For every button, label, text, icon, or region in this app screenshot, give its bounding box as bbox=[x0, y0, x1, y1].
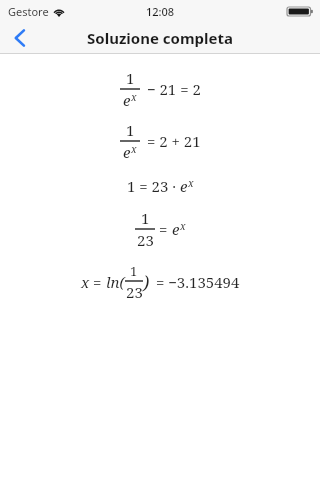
staticText: x bbox=[131, 142, 137, 156]
staticText: 1 = 23 · bbox=[127, 176, 180, 196]
staticText: = 2 + 21 bbox=[143, 131, 201, 151]
staticText: ) bbox=[143, 270, 150, 295]
staticText: − 21 = 2 bbox=[143, 79, 201, 99]
staticText: e bbox=[123, 90, 131, 110]
staticText: = −3.135494 bbox=[152, 272, 240, 292]
staticText: x = bbox=[81, 272, 106, 292]
button[interactable]: Back bbox=[0, 22, 40, 54]
staticText: Gestore bbox=[8, 4, 49, 19]
staticText: 1 bbox=[130, 262, 138, 280]
staticText: 23 bbox=[126, 282, 143, 302]
staticText: e bbox=[172, 219, 180, 239]
staticText: e bbox=[123, 142, 131, 162]
staticText: 1 bbox=[141, 208, 150, 228]
staticText: ln( bbox=[106, 272, 125, 292]
staticText: x bbox=[131, 90, 137, 104]
staticText: = bbox=[159, 219, 172, 239]
staticText: e bbox=[180, 176, 188, 196]
staticText: x bbox=[180, 219, 186, 233]
staticText: x bbox=[188, 176, 194, 190]
staticText: 1 bbox=[126, 120, 135, 140]
staticText: 23 bbox=[137, 230, 154, 250]
staticText: Soluzione completa bbox=[87, 28, 233, 48]
staticText: 12:08 bbox=[146, 4, 175, 19]
staticText: 1 bbox=[126, 68, 135, 88]
